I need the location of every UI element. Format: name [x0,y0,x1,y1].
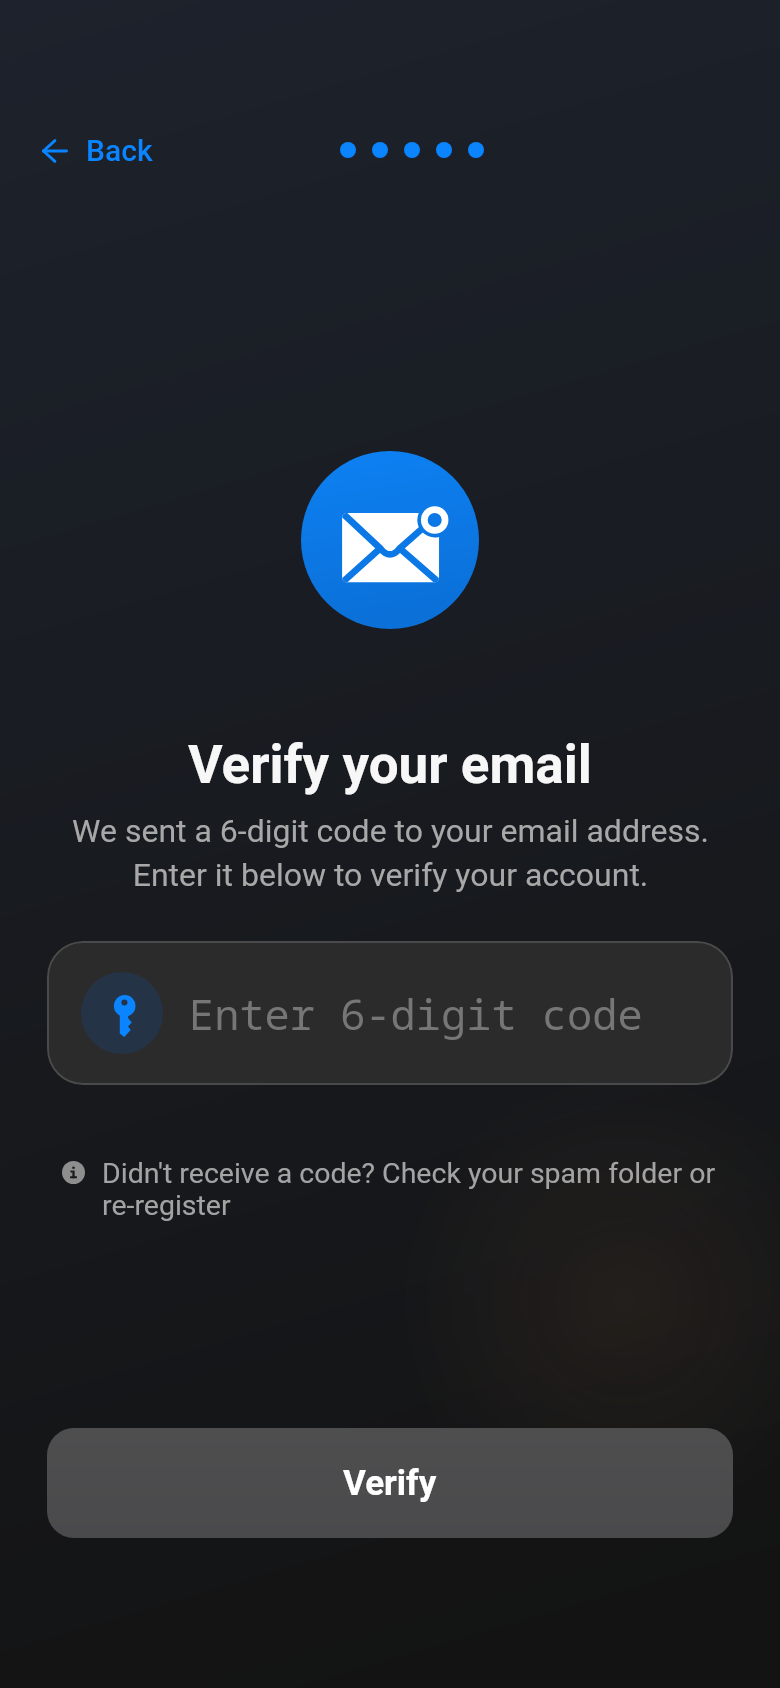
staticText: Didn't receive a code? Check your spam f… [102,1157,730,1221]
other: Back [42,140,68,162]
button[interactable]: Verify [47,1428,733,1538]
staticText: We sent a 6-digit code to your email add… [72,812,709,894]
staticText: Verify [343,1463,437,1504]
button[interactable]: Back [28,123,167,178]
staticText: Back [86,133,153,168]
staticText: Verify your email [188,734,592,796]
staticText: Enter 6-digit code [189,985,643,1042]
button[interactable]: Enter 6-digit code [47,941,733,1085]
